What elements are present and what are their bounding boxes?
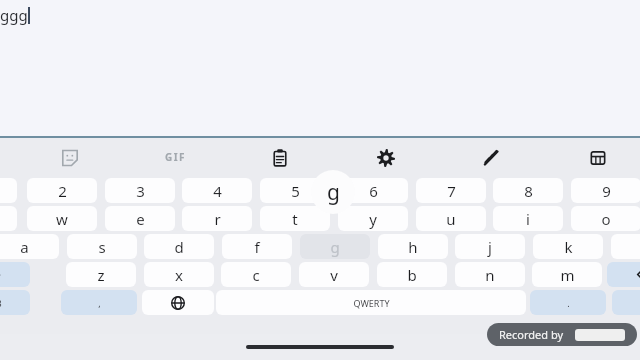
button[interactable]: h bbox=[378, 234, 448, 259]
staticText: , bbox=[98, 297, 101, 309]
button[interactable]: More options bbox=[582, 142, 614, 174]
button[interactable]: m bbox=[532, 262, 602, 287]
button[interactable]: x bbox=[144, 262, 214, 287]
staticText: 9 bbox=[602, 181, 611, 201]
staticText: 7 bbox=[447, 181, 456, 201]
button[interactable]: 6 bbox=[338, 178, 408, 203]
button[interactable]: Enter bbox=[612, 290, 640, 315]
button[interactable]: d bbox=[144, 234, 214, 259]
button[interactable]: 9 bbox=[571, 178, 640, 203]
button[interactable]: f bbox=[222, 234, 292, 259]
button[interactable]: q bbox=[0, 206, 17, 231]
staticText: 4 bbox=[213, 181, 222, 201]
staticText: j bbox=[488, 237, 492, 257]
staticText: w bbox=[56, 209, 68, 229]
staticText: h bbox=[408, 237, 418, 257]
button[interactable]: Stickers bbox=[54, 142, 86, 174]
button[interactable]: ?123 bbox=[0, 290, 30, 315]
staticText: QWERTY bbox=[353, 297, 390, 309]
button[interactable]: w bbox=[27, 206, 97, 231]
button[interactable]: 2 bbox=[27, 178, 97, 203]
staticText: r bbox=[214, 209, 221, 229]
staticText: g bbox=[330, 237, 340, 257]
button[interactable]: s bbox=[67, 234, 137, 259]
button[interactable]: o bbox=[571, 206, 640, 231]
staticText: s bbox=[98, 237, 106, 257]
button[interactable]: 5 bbox=[260, 178, 330, 203]
button[interactable]: z bbox=[66, 262, 136, 287]
button[interactable]: Handwriting bbox=[475, 142, 507, 174]
staticText: f bbox=[254, 237, 260, 257]
button[interactable]: Clipboard bbox=[264, 142, 296, 174]
staticText: n bbox=[485, 265, 495, 285]
button[interactable]: c bbox=[221, 262, 291, 287]
staticText: b bbox=[407, 265, 417, 285]
staticText: o bbox=[601, 209, 611, 229]
staticText: i bbox=[526, 209, 530, 229]
button[interactable]: Settings bbox=[370, 142, 402, 174]
button[interactable]: 1 bbox=[0, 178, 17, 203]
staticText: e bbox=[136, 209, 145, 229]
button[interactable]: t bbox=[260, 206, 330, 231]
button[interactable]: v bbox=[299, 262, 369, 287]
button[interactable]: 7 bbox=[416, 178, 486, 203]
button[interactable]: 4 bbox=[182, 178, 252, 203]
button[interactable]: n bbox=[455, 262, 525, 287]
button[interactable]: a bbox=[0, 234, 59, 259]
staticText: z bbox=[97, 265, 105, 285]
staticText: t bbox=[292, 209, 298, 229]
button[interactable]: Backspace bbox=[607, 262, 640, 287]
staticText: u bbox=[446, 209, 456, 229]
staticText: 8 bbox=[524, 181, 533, 201]
staticText: m bbox=[560, 265, 575, 285]
staticText: 5 bbox=[291, 181, 300, 201]
button[interactable]: e bbox=[105, 206, 175, 231]
button[interactable]: y bbox=[338, 206, 408, 231]
button[interactable]: r bbox=[182, 206, 252, 231]
button[interactable]: GIF bbox=[153, 147, 197, 167]
button[interactable]: Switch language bbox=[142, 290, 214, 315]
staticText: ggg bbox=[0, 5, 28, 25]
button[interactable]: i bbox=[493, 206, 563, 231]
staticText: a bbox=[20, 237, 29, 257]
button[interactable]: u bbox=[416, 206, 486, 231]
staticText: y bbox=[369, 209, 377, 229]
button[interactable]: g bbox=[300, 234, 370, 259]
staticText: 6 bbox=[369, 181, 378, 201]
staticText: . bbox=[567, 297, 570, 309]
button[interactable]: b bbox=[377, 262, 447, 287]
button[interactable]: QWERTY bbox=[216, 290, 526, 315]
button[interactable]: 8 bbox=[493, 178, 563, 203]
staticText: d bbox=[174, 237, 184, 257]
staticText: k bbox=[564, 237, 573, 257]
button[interactable]: 3 bbox=[105, 178, 175, 203]
staticText: c bbox=[252, 265, 260, 285]
staticText: ?123 bbox=[0, 297, 2, 309]
button[interactable]: k bbox=[533, 234, 603, 259]
button[interactable]: Shift bbox=[0, 262, 30, 287]
button[interactable]: j bbox=[455, 234, 525, 259]
staticText: 2 bbox=[58, 181, 67, 201]
button[interactable]: , bbox=[61, 290, 137, 315]
staticText: 3 bbox=[136, 181, 145, 201]
button[interactable]: . bbox=[530, 290, 606, 315]
staticText: g bbox=[327, 178, 340, 207]
staticText: Recorded by bbox=[499, 327, 564, 342]
staticText: v bbox=[330, 265, 338, 285]
staticText: GIF bbox=[165, 150, 186, 164]
staticText: x bbox=[175, 265, 183, 285]
